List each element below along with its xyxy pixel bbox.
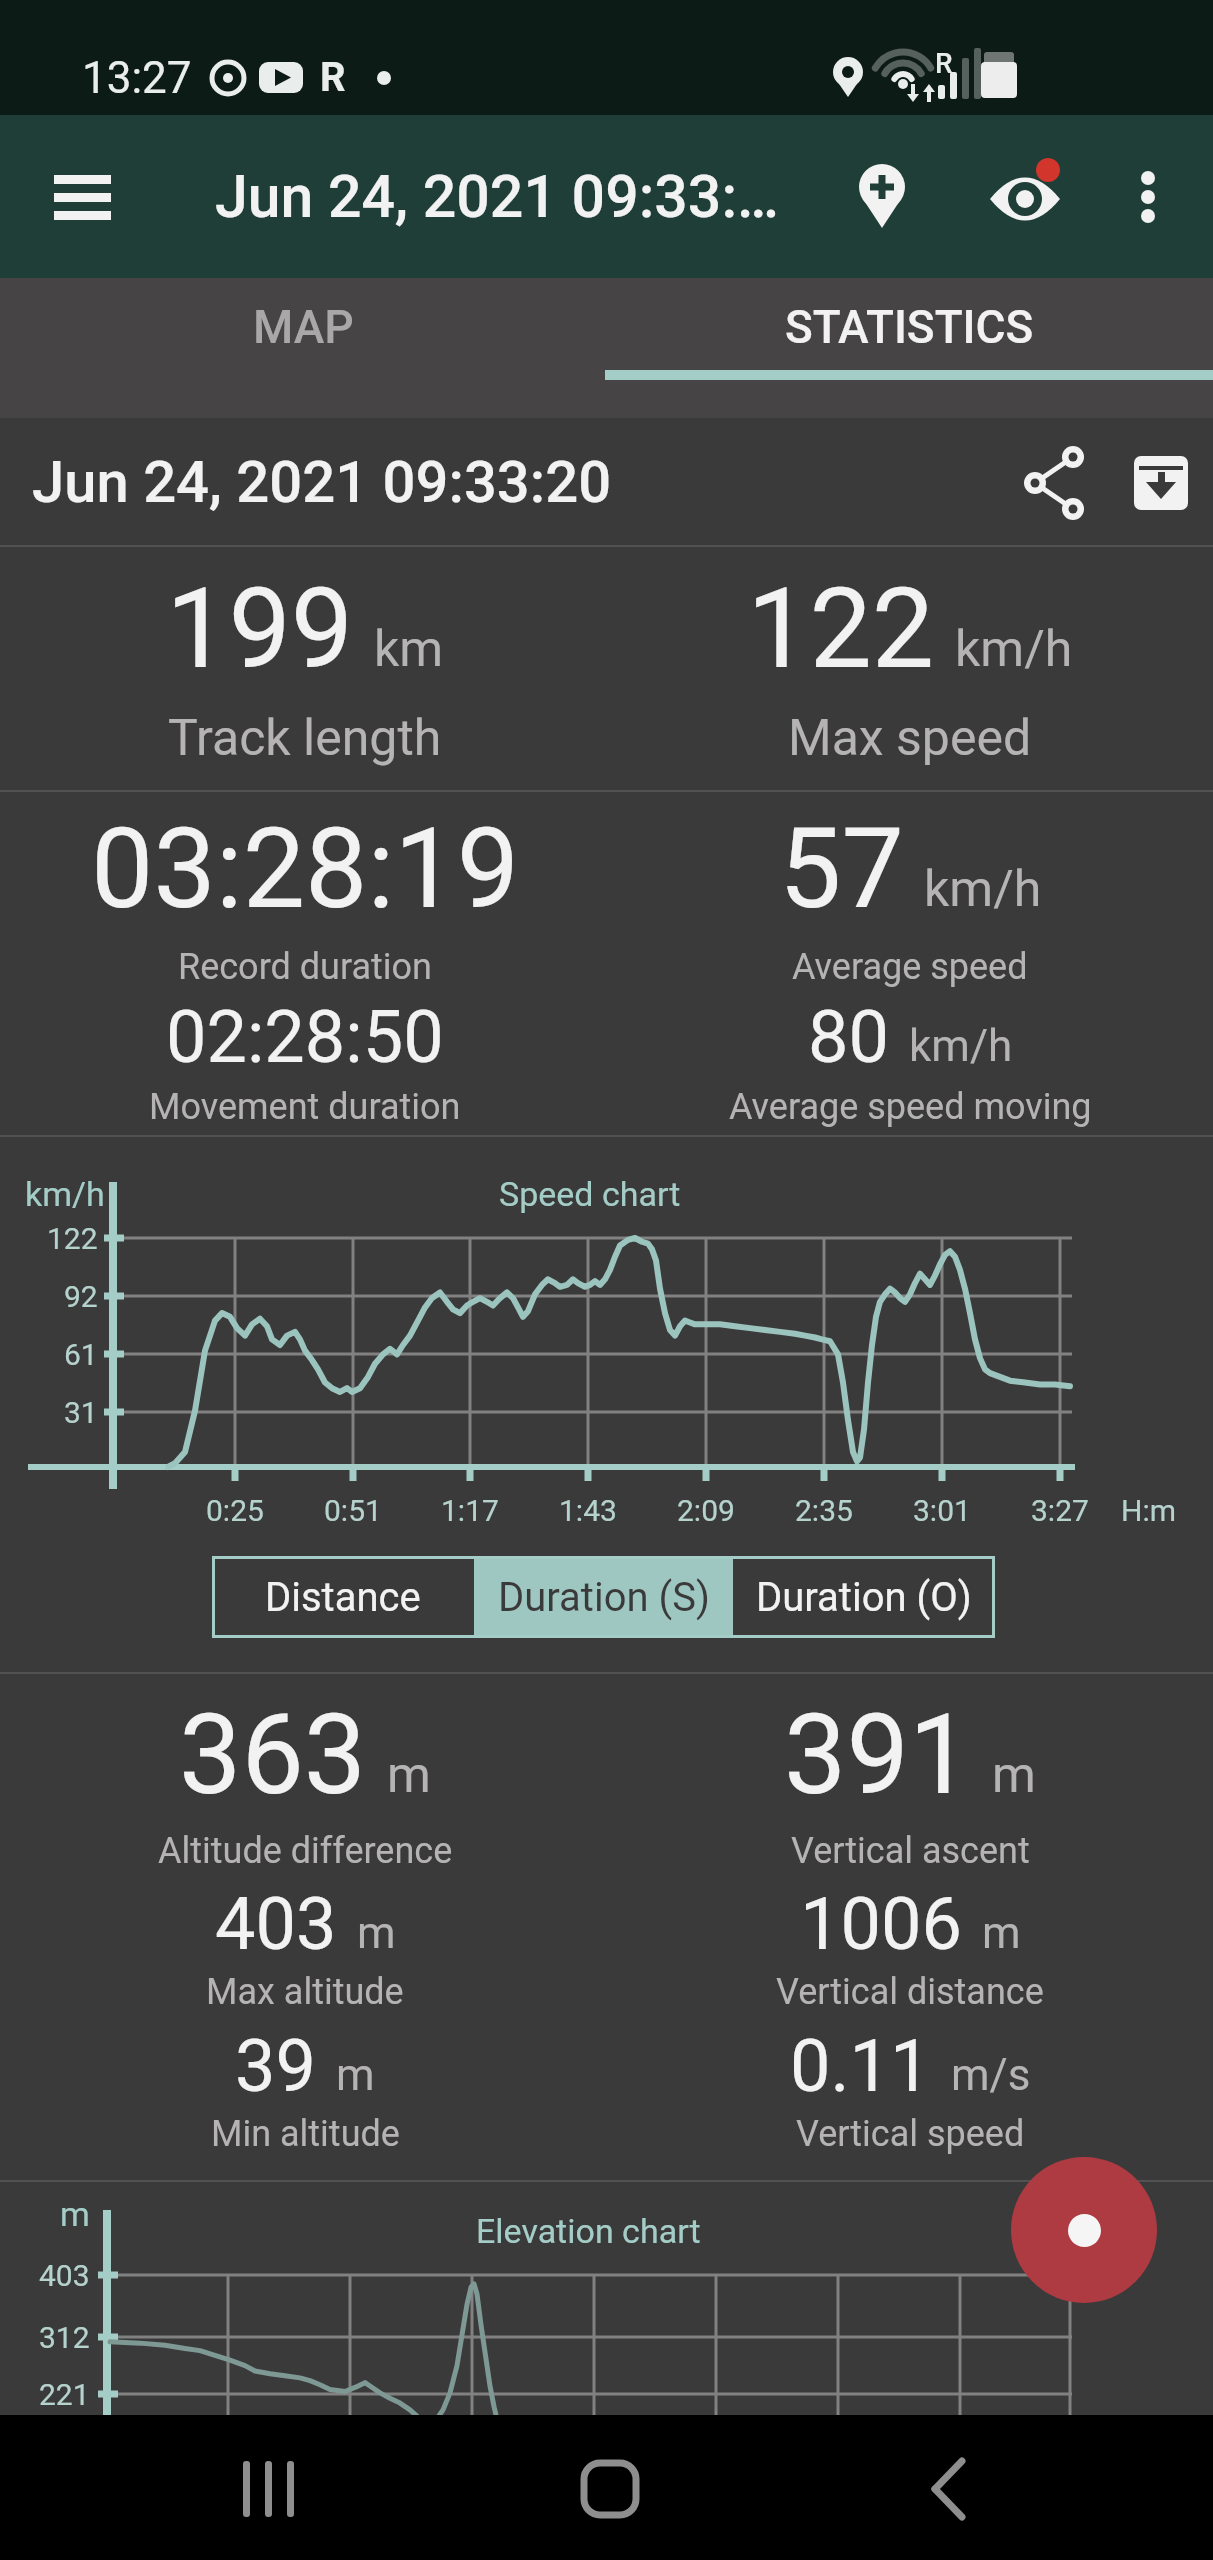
staticText: 13:27: [82, 52, 192, 104]
staticText: Average speed: [792, 946, 1028, 988]
staticText: 391: [784, 1690, 972, 1820]
staticText: 363: [179, 1690, 367, 1820]
staticText: 312: [39, 2320, 90, 2355]
staticText: 39: [235, 2024, 316, 2108]
button[interactable]: [35, 157, 130, 237]
staticText: STATISTICS: [785, 300, 1034, 354]
staticText: Elevation chart: [476, 2211, 701, 2251]
staticText: 3:01: [913, 1493, 971, 1528]
staticText: km/h: [25, 1174, 105, 1214]
staticText: 0:51: [324, 1493, 382, 1528]
staticText: m: [387, 1746, 431, 1805]
staticText: 92: [64, 1279, 98, 1314]
staticText: R: [935, 47, 953, 80]
button[interactable]: [1103, 145, 1193, 255]
staticText: 1006: [800, 1882, 962, 1966]
button[interactable]: [1000, 427, 1108, 535]
staticText: km/h: [955, 620, 1073, 679]
staticText: R: [320, 54, 346, 101]
button[interactable]: STATISTICS: [606, 278, 1213, 418]
staticText: km/h: [909, 1020, 1013, 1072]
staticText: m: [336, 2049, 375, 2101]
staticText: km: [374, 620, 444, 679]
staticText: Jun 24, 2021 09:33:…: [215, 162, 779, 231]
button[interactable]: MAP: [0, 278, 606, 418]
staticText: H:m: [1121, 1493, 1176, 1528]
staticText: MAP: [253, 300, 354, 354]
staticText: m: [992, 1746, 1036, 1805]
staticText: Duration (O): [756, 1574, 972, 1621]
staticText: m: [982, 1907, 1021, 1959]
button[interactable]: [880, 2435, 1020, 2545]
staticText: 57: [779, 804, 904, 934]
staticText: Distance: [265, 1574, 421, 1621]
staticText: 199: [166, 564, 354, 694]
staticText: 403: [39, 2258, 90, 2293]
staticText: Track length: [168, 709, 442, 768]
button[interactable]: [1112, 427, 1212, 535]
staticText: km/h: [924, 860, 1042, 919]
button[interactable]: [545, 2435, 685, 2545]
staticText: 02:28:50: [166, 995, 444, 1079]
staticText: 3:27: [1031, 1493, 1089, 1528]
staticText: Average speed moving: [729, 1086, 1092, 1128]
staticText: 2:35: [795, 1493, 853, 1528]
staticText: 221: [39, 2377, 90, 2412]
staticText: 0:25: [206, 1493, 264, 1528]
staticText: 03:28:19: [91, 804, 520, 934]
button[interactable]: [970, 145, 1080, 255]
staticText: Altitude difference: [158, 1830, 453, 1872]
staticText: Min altitude: [211, 2113, 400, 2155]
staticText: 1:17: [441, 1493, 499, 1528]
staticText: Jun 24, 2021 09:33:20: [32, 448, 612, 516]
staticText: 80: [808, 995, 889, 1079]
button[interactable]: Distance: [212, 1556, 474, 1638]
staticText: 2:09: [677, 1493, 735, 1528]
staticText: 122: [47, 1221, 98, 1256]
staticText: Duration (S): [498, 1574, 710, 1621]
staticText: Max altitude: [206, 1971, 404, 2013]
staticText: Speed chart: [499, 1174, 681, 1214]
staticText: 122: [747, 564, 935, 694]
button[interactable]: Duration (O): [733, 1556, 995, 1638]
staticText: m/s: [951, 2049, 1031, 2101]
staticText: 1:43: [559, 1493, 617, 1528]
staticText: m: [60, 2194, 90, 2234]
button[interactable]: [1011, 2157, 1157, 2303]
staticText: Vertical ascent: [791, 1830, 1030, 1872]
staticText: m: [357, 1907, 396, 1959]
staticText: Vertical speed: [796, 2113, 1025, 2155]
staticText: 31: [64, 1395, 98, 1430]
staticText: Max speed: [788, 709, 1032, 768]
button[interactable]: [200, 2435, 340, 2545]
staticText: Record duration: [178, 946, 432, 988]
staticText: 403: [215, 1882, 337, 1966]
staticText: Movement duration: [149, 1086, 461, 1128]
staticText: Vertical distance: [776, 1971, 1044, 2013]
button[interactable]: [832, 145, 932, 255]
staticText: 0.11: [790, 2024, 931, 2108]
staticText: 61: [64, 1337, 98, 1372]
button[interactable]: Duration (S): [474, 1556, 733, 1638]
